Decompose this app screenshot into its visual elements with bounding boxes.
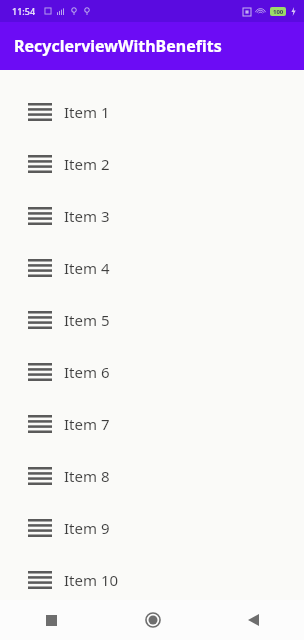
button[interactable]: Drag handle for Item 8 bbox=[28, 467, 52, 485]
button[interactable]: Drag handle for Item 10 bbox=[0, 554, 304, 600]
staticText: Item 10 bbox=[64, 570, 119, 590]
staticText: Item 5 bbox=[64, 310, 110, 330]
button[interactable]: Recent apps bbox=[0, 600, 102, 640]
staticText: 100 bbox=[273, 8, 284, 16]
button[interactable]: Drag handle for Item 5 bbox=[28, 311, 52, 329]
button[interactable]: Drag handle for Item 5 bbox=[0, 294, 304, 346]
button[interactable]: Drag handle for Item 1 bbox=[0, 86, 304, 138]
button[interactable]: Drag handle for Item 6 bbox=[28, 363, 52, 381]
staticText: Item 1 bbox=[64, 102, 110, 122]
button[interactable]: Drag handle for Item 7 bbox=[0, 398, 304, 450]
staticText: Item 4 bbox=[64, 258, 110, 278]
staticText: Item 8 bbox=[64, 466, 110, 486]
button[interactable]: Drag handle for Item 7 bbox=[28, 415, 52, 433]
button[interactable]: Drag handle for Item 4 bbox=[28, 259, 52, 277]
staticText: Item 6 bbox=[64, 362, 110, 382]
button[interactable]: Drag handle for Item 9 bbox=[28, 519, 52, 537]
staticText: Item 7 bbox=[64, 414, 110, 434]
staticText: RecyclerviewWithBenefits bbox=[14, 35, 222, 57]
staticText: Item 2 bbox=[64, 154, 110, 174]
button[interactable]: Drag handle for Item 10 bbox=[28, 571, 52, 589]
button[interactable]: Drag handle for Item 2 bbox=[0, 138, 304, 190]
button[interactable]: Drag handle for Item 9 bbox=[0, 502, 304, 554]
staticText: Item 3 bbox=[64, 206, 110, 226]
staticText: 11:54 bbox=[12, 5, 36, 17]
button[interactable]: Drag handle for Item 8 bbox=[0, 450, 304, 502]
button[interactable]: Drag handle for Item 4 bbox=[0, 242, 304, 294]
button[interactable]: Drag handle for Item 2 bbox=[28, 155, 52, 173]
staticText: Item 9 bbox=[64, 518, 110, 538]
button[interactable]: Back bbox=[203, 600, 304, 640]
button[interactable]: Drag handle for Item 6 bbox=[0, 346, 304, 398]
button[interactable]: Home bbox=[102, 600, 203, 640]
button[interactable]: Drag handle for Item 3 bbox=[0, 190, 304, 242]
button[interactable]: Drag handle for Item 3 bbox=[28, 207, 52, 225]
button[interactable]: Drag handle for Item 1 bbox=[28, 103, 52, 121]
